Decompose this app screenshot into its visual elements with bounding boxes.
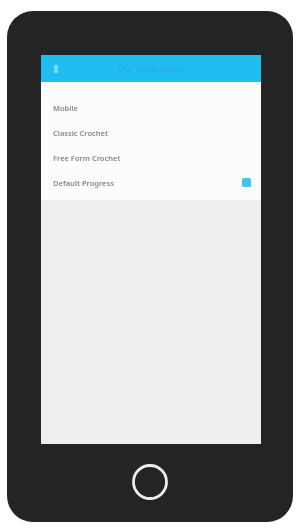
button[interactable]: Free Form Crochet xyxy=(41,145,261,170)
button[interactable]: Default Progress xyxy=(41,170,261,195)
staticText: Mobile xyxy=(53,103,78,113)
button[interactable]: Enable default progress xyxy=(242,178,251,187)
staticText: Default Progress xyxy=(53,178,114,188)
button[interactable]: Classic Crochet xyxy=(41,120,261,145)
button[interactable]: Mobile xyxy=(41,95,261,120)
button[interactable]: Open navigation menu xyxy=(51,62,61,76)
staticText: Free Form Crochet xyxy=(53,153,121,163)
button[interactable]: Home xyxy=(131,463,169,501)
staticText: Classic Crochet xyxy=(53,128,109,138)
staticText: Our Notifications xyxy=(118,63,184,74)
